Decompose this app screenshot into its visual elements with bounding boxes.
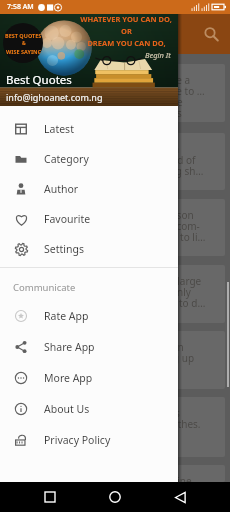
staticText: Share App xyxy=(44,340,95,354)
button[interactable]: ason xyxy=(5,199,225,256)
staticText: lothes. xyxy=(169,417,201,431)
staticText: nd of xyxy=(171,153,196,167)
staticText: Privacy Policy xyxy=(44,433,111,447)
button[interactable]: Rate App xyxy=(0,300,178,331)
staticText: Settings xyxy=(44,242,84,256)
button[interactable]: Category xyxy=(0,144,178,174)
staticText: in xyxy=(175,340,184,354)
staticText: s xyxy=(177,106,182,120)
button[interactable]: Favourite xyxy=(0,204,178,234)
button[interactable]: Recents xyxy=(35,482,65,512)
staticText: e xyxy=(177,95,183,109)
button[interactable]: Settings xyxy=(0,234,178,264)
staticText: & xyxy=(22,40,26,47)
button[interactable]: a large xyxy=(5,265,225,323)
staticText: ing sh… xyxy=(167,164,204,178)
staticText: s xyxy=(175,406,180,420)
button[interactable]: ke a xyxy=(5,64,225,122)
staticText: WISE SAYING xyxy=(6,48,42,55)
staticText: Begin It xyxy=(145,50,171,60)
staticText: ason xyxy=(171,208,194,222)
staticText: only xyxy=(171,285,191,299)
staticText: 7:58 AM xyxy=(7,2,34,12)
staticText: is to d… xyxy=(169,296,206,310)
button[interactable]: Privacy Policy xyxy=(0,424,178,455)
staticText: ce to li… xyxy=(167,230,206,244)
button[interactable]: in xyxy=(5,331,225,389)
staticText: s com- xyxy=(169,219,200,233)
staticText: Latest xyxy=(44,122,74,136)
button[interactable]: Search xyxy=(197,20,225,48)
staticText: Category xyxy=(44,152,89,166)
staticText: BEST QUOTES xyxy=(5,32,42,39)
button[interactable]: s xyxy=(5,397,225,457)
staticText: Communicate xyxy=(13,281,76,294)
staticText: a large xyxy=(169,274,202,288)
staticText: Favourite xyxy=(44,212,91,226)
staticText: Rate App xyxy=(44,309,89,323)
button[interactable]: Back xyxy=(165,482,195,512)
staticText: DREAM YOU CAN DO, xyxy=(87,38,166,48)
button[interactable]: hine xyxy=(5,465,225,482)
button[interactable]: Share App xyxy=(0,331,178,362)
staticText: OR xyxy=(121,26,132,36)
staticText: More App xyxy=(44,371,93,385)
staticText: Best Quotes xyxy=(6,72,72,88)
staticText: WHATEVER YOU CAN DO, xyxy=(80,14,172,24)
staticText: ke a xyxy=(171,73,191,87)
staticText: Author xyxy=(44,182,79,196)
button[interactable]: More App xyxy=(0,362,178,393)
button[interactable]: Author xyxy=(0,174,178,204)
staticText: ke to … xyxy=(171,84,205,98)
staticText: hine xyxy=(171,474,192,482)
button[interactable]: Home xyxy=(100,482,130,512)
staticText: info@ighoanet.com.ng xyxy=(6,91,103,103)
button[interactable]: n xyxy=(5,133,225,190)
staticText: About Us xyxy=(44,402,90,416)
staticText: n xyxy=(173,142,180,156)
staticText: g up xyxy=(173,351,195,365)
button[interactable]: Latest xyxy=(0,114,178,144)
button[interactable]: About Us xyxy=(0,393,178,424)
